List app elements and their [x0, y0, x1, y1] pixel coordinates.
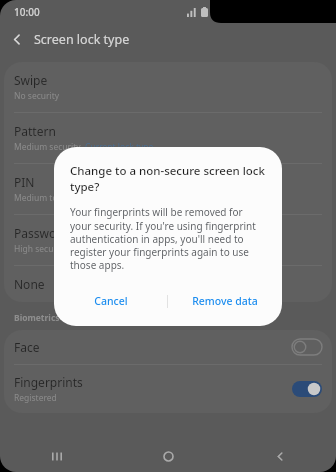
button[interactable]: None	[4, 266, 332, 302]
button[interactable]: Swipe	[4, 62, 332, 112]
staticText: Pattern	[14, 123, 56, 139]
button[interactable]: Home	[112, 440, 224, 472]
staticText: Fingerprints	[14, 374, 83, 390]
button[interactable]: Recent apps	[0, 440, 112, 472]
staticText: No security	[14, 90, 60, 102]
button[interactable]: Pattern	[4, 113, 332, 163]
staticText: Screen lock type	[34, 31, 130, 48]
button[interactable]: Back	[224, 440, 336, 472]
staticText: Biometrics	[14, 312, 60, 324]
staticText: Medium to high security	[14, 192, 112, 204]
button[interactable]: Remove data	[168, 286, 282, 316]
staticText: Registered	[14, 392, 57, 404]
staticText: Current lock type	[85, 141, 154, 153]
staticText: Face	[14, 339, 40, 355]
staticText: Change to a non-secure screen lock type?	[70, 163, 266, 194]
button[interactable]: Back	[0, 23, 34, 56]
staticText: PIN	[14, 174, 35, 190]
staticText: Password	[14, 225, 69, 241]
staticText: 10:00	[14, 5, 40, 19]
staticText: Cancel	[94, 294, 128, 308]
staticText: None	[14, 276, 45, 292]
button[interactable]: Cancel	[54, 286, 167, 316]
button[interactable]: Face off	[292, 339, 322, 355]
staticText: Medium security,	[14, 141, 85, 153]
staticText: Your fingerprints will be removed for yo…	[70, 205, 266, 272]
button[interactable]: Fingerprints on	[292, 381, 322, 397]
button[interactable]: PIN	[4, 164, 332, 214]
staticText: Swipe	[14, 72, 48, 88]
button[interactable]: Face	[4, 330, 332, 364]
staticText: Remove data	[192, 294, 258, 308]
staticText: High security	[14, 243, 67, 255]
button[interactable]: Fingerprints	[4, 365, 332, 413]
button[interactable]: Password	[4, 215, 332, 265]
